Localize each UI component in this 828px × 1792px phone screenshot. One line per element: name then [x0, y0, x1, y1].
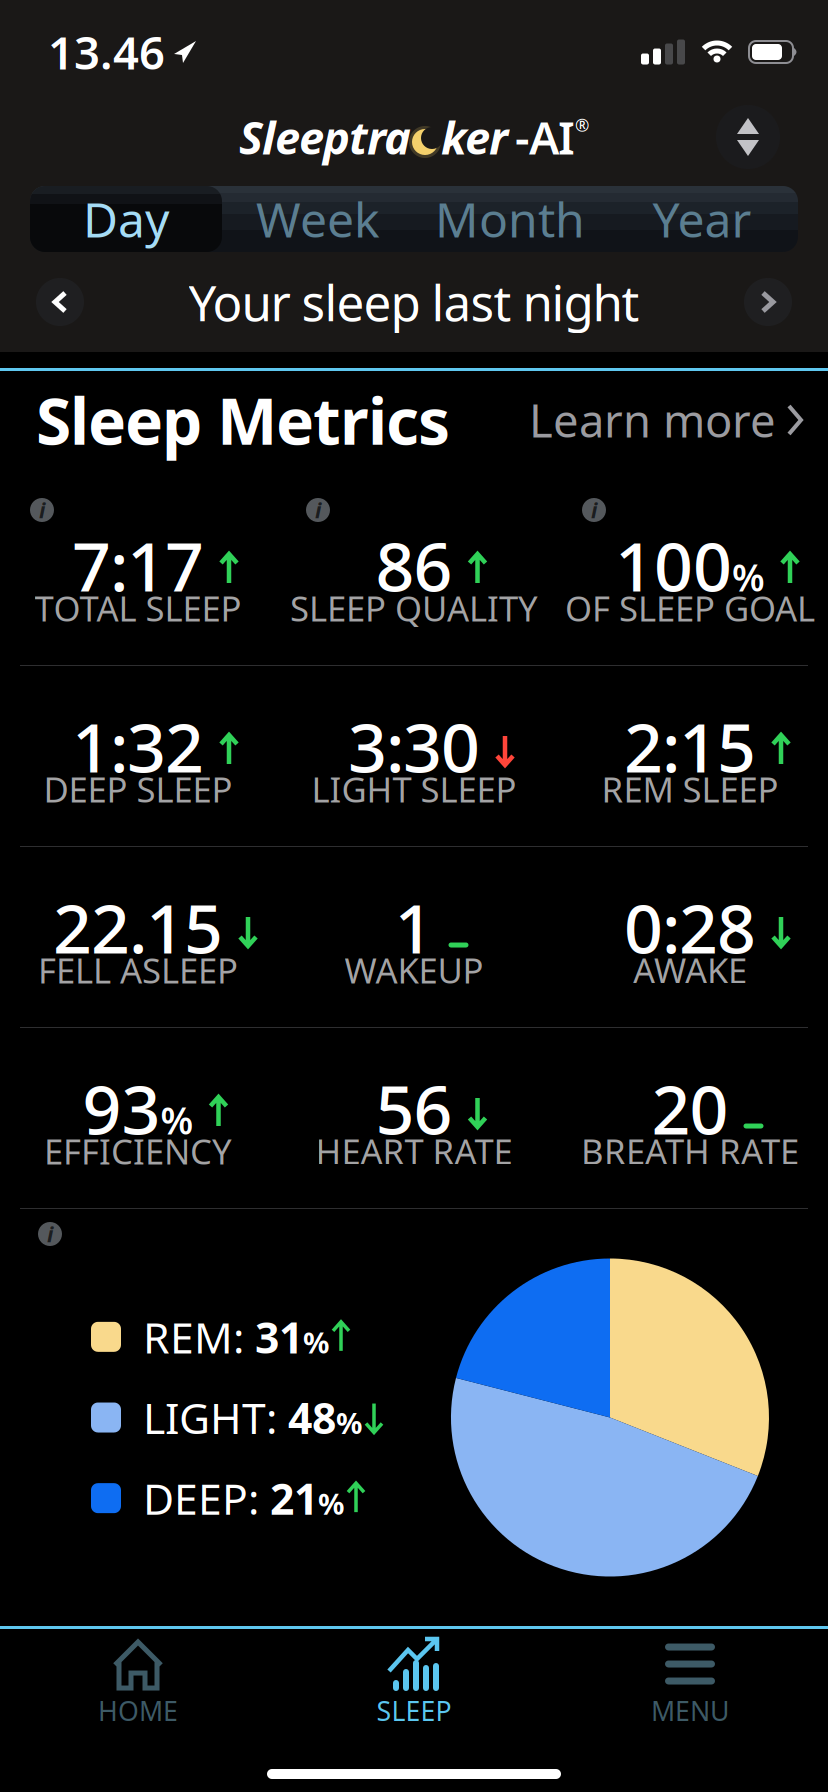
button[interactable]: MENU [552, 1637, 828, 1728]
staticText: SLEEP QUALITY [290, 585, 538, 631]
staticText: Your sleep last night [188, 269, 639, 335]
staticText: HEART RATE [315, 1128, 512, 1174]
button[interactable]: Info [306, 498, 330, 522]
staticText: FELL ASLEEP [38, 947, 238, 993]
staticText: i [315, 496, 321, 524]
button[interactable]: Year [606, 186, 798, 252]
staticText: HOME [98, 1693, 178, 1728]
staticText: 93% [82, 1063, 193, 1153]
button[interactable]: Info [582, 498, 606, 522]
staticText: i [39, 496, 45, 524]
staticText: MENU [651, 1693, 729, 1728]
button[interactable]: Learn more [529, 390, 804, 450]
staticText: 100% [615, 520, 765, 610]
staticText: i [47, 1220, 53, 1248]
staticText: Year [652, 187, 751, 251]
staticText: 56 [375, 1063, 452, 1153]
staticText: ® [575, 113, 589, 136]
staticText: REM: 31% [143, 1308, 329, 1365]
staticText: 22.15 [53, 882, 223, 972]
button[interactable]: Previous night [36, 278, 84, 326]
staticText: -AI [515, 107, 575, 167]
staticText: DEEP SLEEP [43, 766, 232, 812]
staticText: i [591, 496, 597, 524]
button[interactable]: Day [30, 186, 222, 252]
staticText: Learn more [529, 390, 776, 450]
staticText: LIGHT: 48% [143, 1389, 362, 1446]
button[interactable]: Next night [744, 278, 792, 326]
staticText: AWAKE [633, 947, 747, 993]
staticText: 1 [394, 882, 433, 972]
staticText: ker [441, 107, 508, 167]
button[interactable]: Month [414, 186, 606, 252]
button[interactable]: Info [38, 1222, 62, 1246]
staticText: 20 [651, 1063, 728, 1153]
staticText: LIGHT SLEEP [311, 766, 516, 812]
button[interactable]: HOME [0, 1637, 276, 1728]
button[interactable]: SLEEP [276, 1637, 552, 1728]
staticText: Sleeptra [239, 107, 411, 167]
staticText: SLEEP [376, 1693, 451, 1728]
staticText: 13.46 [48, 22, 165, 82]
staticText: Day [83, 187, 169, 251]
button[interactable]: Reorder [716, 105, 780, 169]
staticText: Sleep Metrics [36, 377, 450, 462]
staticText: Month [435, 187, 585, 251]
staticText: EFFICIENCY [44, 1128, 232, 1174]
staticText: WAKEUP [344, 947, 483, 993]
staticText: REM SLEEP [601, 766, 778, 812]
staticText: TOTAL SLEEP [34, 585, 241, 631]
staticText: 3:30 [348, 701, 480, 791]
staticText: 86 [375, 520, 452, 610]
staticText: Week [256, 187, 380, 251]
staticText: 2:15 [624, 701, 756, 791]
staticText: BREATH RATE [581, 1128, 799, 1174]
staticText: 1:32 [72, 701, 204, 791]
staticText: 0:28 [624, 882, 756, 972]
staticText: OF SLEEP GOAL [565, 585, 815, 631]
button[interactable]: Week [222, 186, 414, 252]
staticText: 7:17 [72, 520, 204, 610]
staticText: DEEP: 21% [143, 1470, 344, 1526]
button[interactable]: Info [30, 498, 54, 522]
